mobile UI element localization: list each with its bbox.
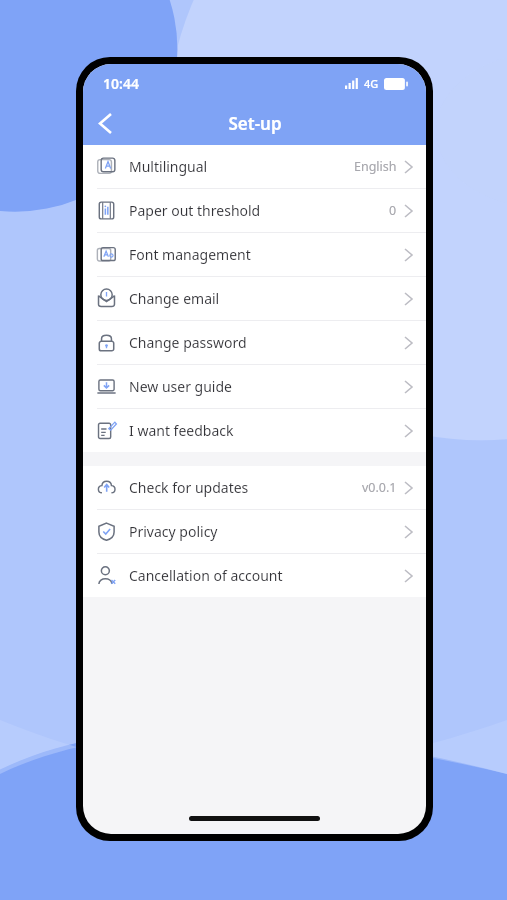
staticText: English	[354, 158, 397, 175]
staticText: Change email	[129, 289, 405, 308]
button[interactable]: Paper out threshold	[83, 189, 426, 233]
button[interactable]: Multilingual	[83, 145, 426, 189]
button[interactable]: Font management	[83, 233, 426, 277]
staticText: Cancellation of account	[129, 566, 405, 585]
staticText: Check for updates	[129, 478, 362, 497]
button[interactable]: I want feedback	[83, 409, 426, 452]
button[interactable]: Back	[83, 102, 127, 145]
button[interactable]: Cancellation of account	[83, 554, 426, 597]
staticText: New user guide	[129, 377, 405, 396]
button[interactable]: New user guide	[83, 365, 426, 409]
staticText: Paper out threshold	[129, 201, 389, 220]
staticText: Privacy policy	[129, 522, 405, 541]
staticText: 4G	[364, 76, 379, 91]
staticText: 0	[389, 202, 397, 219]
staticText: Multilingual	[129, 157, 354, 176]
staticText: I want feedback	[129, 421, 405, 440]
staticText: v0.0.1	[362, 479, 397, 496]
button[interactable]: Privacy policy	[83, 510, 426, 554]
button[interactable]: Change email	[83, 277, 426, 321]
button[interactable]: Check for updates	[83, 466, 426, 510]
staticText: Font management	[129, 245, 405, 264]
staticText: Set-up	[228, 112, 282, 135]
button[interactable]: Change password	[83, 321, 426, 365]
staticText: Change password	[129, 333, 405, 352]
staticText: 10:44	[103, 74, 139, 93]
